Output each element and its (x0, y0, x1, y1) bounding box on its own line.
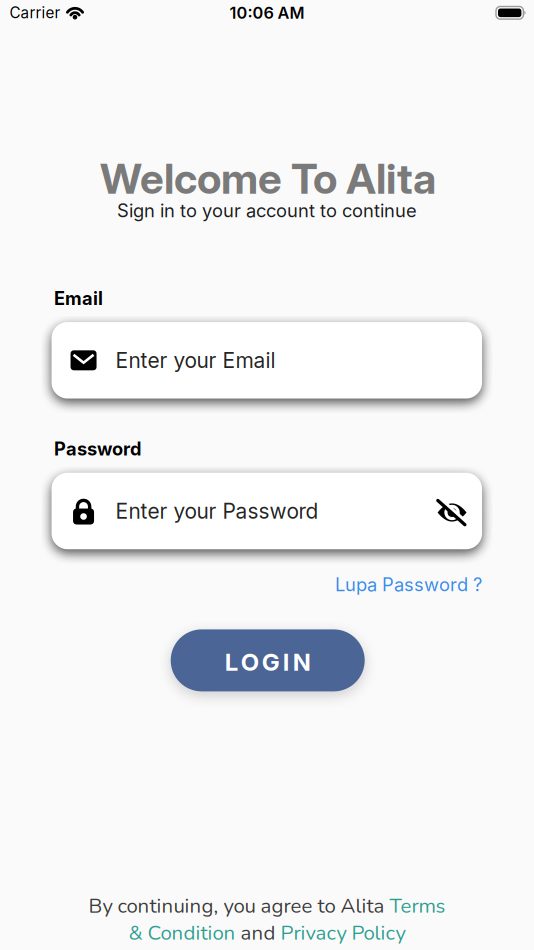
staticText: Sign in to your account to continue (117, 200, 417, 222)
staticText: & Condition (128, 919, 235, 947)
staticText: Password (54, 438, 141, 460)
staticText: Lupa Password ? (335, 573, 482, 595)
button[interactable]: Terms (389, 892, 445, 920)
staticText: Terms (389, 892, 445, 920)
button[interactable]: LOGIN (171, 629, 365, 691)
button[interactable]: & Condition (128, 919, 235, 947)
button[interactable]: Enter your Email (52, 322, 482, 399)
staticText: and (235, 919, 280, 947)
button[interactable]: Lupa Password ? (335, 573, 482, 595)
staticText: Email (54, 287, 103, 309)
staticText: Privacy Policy (280, 919, 405, 947)
button[interactable]: Enter your Password (52, 473, 482, 549)
button[interactable]: Show password (437, 498, 467, 524)
staticText: Enter your Password (116, 498, 319, 524)
staticText: Welcome To Alita (100, 153, 436, 204)
staticText: Enter your Email (116, 348, 276, 373)
staticText: LOGIN (225, 647, 311, 676)
button[interactable]: Privacy Policy (280, 919, 405, 947)
staticText: Carrier (9, 4, 60, 22)
staticText: By continuing, you agree to Alita (88, 892, 389, 920)
staticText: 10:06 AM (229, 3, 304, 23)
